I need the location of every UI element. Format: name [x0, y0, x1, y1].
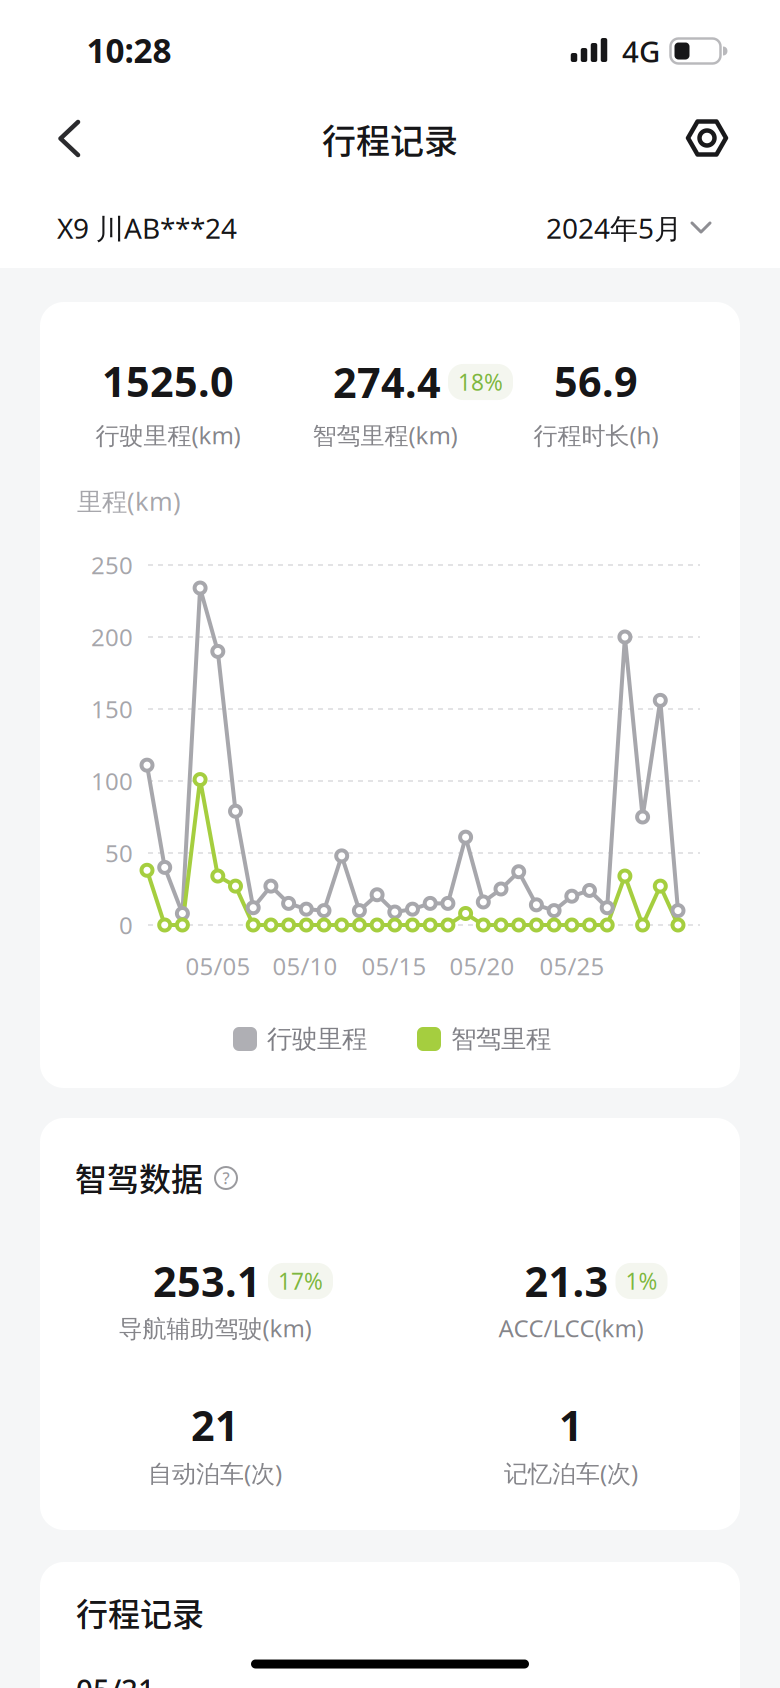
staticText: 17%	[278, 1266, 323, 1296]
staticText: 05/15	[361, 950, 426, 982]
button[interactable]: Settings	[686, 119, 728, 157]
staticText: ACC/LCC(km)	[498, 1312, 643, 1344]
staticText: 行驶里程	[267, 1023, 367, 1054]
staticText: 1	[559, 1398, 583, 1452]
staticText: 05/20	[449, 950, 514, 982]
staticText: 智驾里程(km)	[312, 419, 457, 451]
staticText: 200	[91, 621, 133, 653]
staticText: 4G	[622, 31, 660, 70]
staticText: 18%	[458, 367, 503, 397]
staticText: 21.3	[524, 1254, 608, 1308]
staticText: 里程(km)	[77, 484, 181, 518]
button[interactable]: 2024年5月	[546, 209, 712, 247]
staticText: 05/10	[272, 950, 337, 982]
staticText: 导航辅助驾驶(km)	[118, 1312, 311, 1344]
staticText: 05/05	[185, 950, 250, 982]
staticText: 05/21	[76, 1669, 155, 1688]
button[interactable]: Back	[57, 119, 83, 159]
staticText: 2024年5月	[546, 209, 682, 247]
staticText: 行程时长(h)	[533, 419, 658, 451]
staticText: ?	[222, 1167, 229, 1189]
staticText: 10:28	[86, 28, 171, 72]
staticText: 0	[119, 909, 133, 941]
staticText: 行程记录	[322, 114, 458, 164]
staticText: 253.1	[153, 1254, 261, 1308]
staticText: 56.9	[554, 354, 638, 408]
button[interactable]: 智驾数据说明	[213, 1165, 239, 1191]
staticText: 自动泊车(次)	[148, 1457, 282, 1489]
staticText: X9 川AB***24	[57, 209, 237, 247]
staticText: 150	[91, 693, 133, 725]
staticText: 05/25	[539, 950, 604, 982]
staticText: 智驾里程	[451, 1023, 551, 1054]
staticText: 智驾数据	[75, 1154, 203, 1200]
staticText: 50	[105, 837, 133, 869]
staticText: 行驶里程(km)	[95, 419, 240, 451]
staticText: 250	[91, 549, 133, 581]
staticText: 100	[91, 765, 133, 797]
staticText: 记忆泊车(次)	[504, 1457, 638, 1489]
staticText: 1%	[625, 1266, 657, 1296]
staticText: 21	[191, 1398, 239, 1452]
staticText: 行程记录	[76, 1589, 204, 1635]
staticText: 1525.0	[102, 354, 234, 408]
staticText: 274.4	[333, 355, 441, 409]
